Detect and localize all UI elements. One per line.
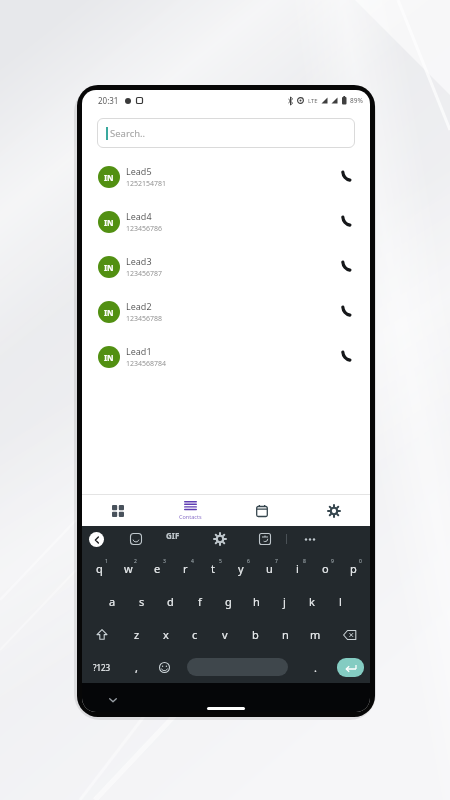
staticText: IN bbox=[104, 352, 114, 363]
button[interactable]: j bbox=[270, 585, 298, 618]
button[interactable]: a bbox=[98, 585, 127, 618]
staticText: 4 bbox=[191, 558, 194, 565]
button[interactable]: l bbox=[326, 585, 354, 618]
staticText: y bbox=[238, 561, 244, 576]
button[interactable]: i bbox=[283, 552, 311, 585]
staticText: IN bbox=[104, 307, 114, 318]
staticText: j bbox=[283, 594, 286, 609]
staticText: 6 bbox=[247, 558, 250, 565]
staticText: 123456787 bbox=[126, 269, 163, 279]
button[interactable] bbox=[336, 212, 356, 232]
button[interactable] bbox=[330, 651, 370, 683]
button[interactable] bbox=[187, 658, 288, 676]
staticText: n bbox=[282, 627, 289, 642]
staticText: Lead4 bbox=[126, 210, 152, 222]
button[interactable] bbox=[130, 533, 142, 545]
button[interactable] bbox=[304, 538, 316, 541]
button[interactable]: d bbox=[156, 585, 185, 618]
button[interactable]: b bbox=[240, 618, 270, 651]
staticText: Contacts bbox=[179, 513, 202, 520]
staticText: p bbox=[350, 561, 357, 576]
button[interactable]: e bbox=[143, 552, 171, 585]
button[interactable] bbox=[336, 347, 356, 367]
staticText: GIF bbox=[166, 530, 180, 541]
button[interactable]: m bbox=[300, 618, 330, 651]
staticText: l bbox=[339, 594, 342, 609]
staticText: Search.. bbox=[110, 127, 146, 140]
button[interactable]: k bbox=[298, 585, 326, 618]
button[interactable]: q bbox=[85, 552, 114, 585]
button[interactable]: y bbox=[227, 552, 255, 585]
button[interactable]: IN bbox=[82, 334, 370, 379]
staticText: e bbox=[154, 561, 161, 576]
staticText: 5 bbox=[219, 558, 222, 565]
button[interactable] bbox=[82, 495, 154, 526]
staticText: o bbox=[322, 561, 329, 576]
staticText: z bbox=[134, 627, 140, 642]
staticText: 89% bbox=[350, 96, 363, 105]
button[interactable]: z bbox=[122, 618, 151, 651]
button[interactable] bbox=[336, 257, 356, 277]
staticText: w bbox=[124, 561, 133, 576]
staticText: s bbox=[139, 594, 145, 609]
button[interactable]: n bbox=[270, 618, 300, 651]
staticText: IN bbox=[104, 172, 114, 183]
staticText: 2 bbox=[134, 558, 137, 565]
staticText: 0 bbox=[359, 558, 362, 565]
button[interactable]: c bbox=[180, 618, 210, 651]
button[interactable] bbox=[214, 533, 226, 545]
button[interactable]: o bbox=[311, 552, 339, 585]
button[interactable]: IN bbox=[82, 244, 370, 289]
staticText: 8 bbox=[303, 558, 306, 565]
staticText: 7 bbox=[275, 558, 278, 565]
staticText: m bbox=[310, 627, 321, 642]
button[interactable]: ?123 bbox=[82, 651, 122, 683]
button[interactable]: x bbox=[151, 618, 180, 651]
button[interactable]: s bbox=[127, 585, 156, 618]
staticText: 9 bbox=[331, 558, 334, 565]
button[interactable] bbox=[150, 651, 178, 683]
staticText: Lead2 bbox=[126, 300, 152, 312]
staticText: 20:31 bbox=[98, 95, 119, 106]
button[interactable] bbox=[82, 618, 122, 651]
button[interactable]: u bbox=[255, 552, 283, 585]
staticText: IN bbox=[104, 262, 114, 273]
button[interactable]: g bbox=[214, 585, 242, 618]
staticText: x bbox=[163, 627, 169, 642]
staticText: g bbox=[225, 594, 232, 609]
button[interactable]: h bbox=[242, 585, 270, 618]
button[interactable]: t bbox=[199, 552, 227, 585]
staticText: b bbox=[252, 627, 259, 642]
button[interactable]: p bbox=[339, 552, 367, 585]
button[interactable] bbox=[336, 302, 356, 322]
button[interactable]: r bbox=[171, 552, 199, 585]
button[interactable]: , bbox=[122, 651, 150, 683]
staticText: f bbox=[198, 594, 202, 609]
button[interactable]: w bbox=[114, 552, 143, 585]
button[interactable] bbox=[226, 495, 298, 526]
staticText: . bbox=[314, 660, 317, 675]
staticText: 3 bbox=[163, 558, 166, 565]
button[interactable]: IN bbox=[82, 154, 370, 199]
staticText: ?123 bbox=[93, 662, 111, 673]
staticText: Lead5 bbox=[126, 165, 152, 177]
staticText: 1234568784 bbox=[126, 359, 167, 369]
button[interactable]: Search.. bbox=[97, 118, 355, 148]
staticText: r bbox=[183, 561, 188, 576]
button[interactable] bbox=[298, 495, 370, 526]
button[interactable]: Contacts bbox=[154, 495, 226, 526]
staticText: d bbox=[167, 594, 174, 609]
button[interactable] bbox=[336, 167, 356, 187]
staticText: 1 bbox=[105, 558, 108, 565]
button[interactable]: IN bbox=[82, 289, 370, 334]
button[interactable]: GIF bbox=[166, 530, 180, 541]
button[interactable]: . bbox=[300, 651, 330, 683]
button[interactable]: v bbox=[210, 618, 240, 651]
button[interactable] bbox=[89, 532, 104, 547]
button[interactable] bbox=[330, 618, 370, 651]
button[interactable] bbox=[259, 533, 271, 545]
button[interactable]: IN bbox=[82, 199, 370, 244]
staticText: , bbox=[135, 660, 138, 675]
staticText: 123456786 bbox=[126, 224, 163, 234]
button[interactable]: f bbox=[185, 585, 214, 618]
